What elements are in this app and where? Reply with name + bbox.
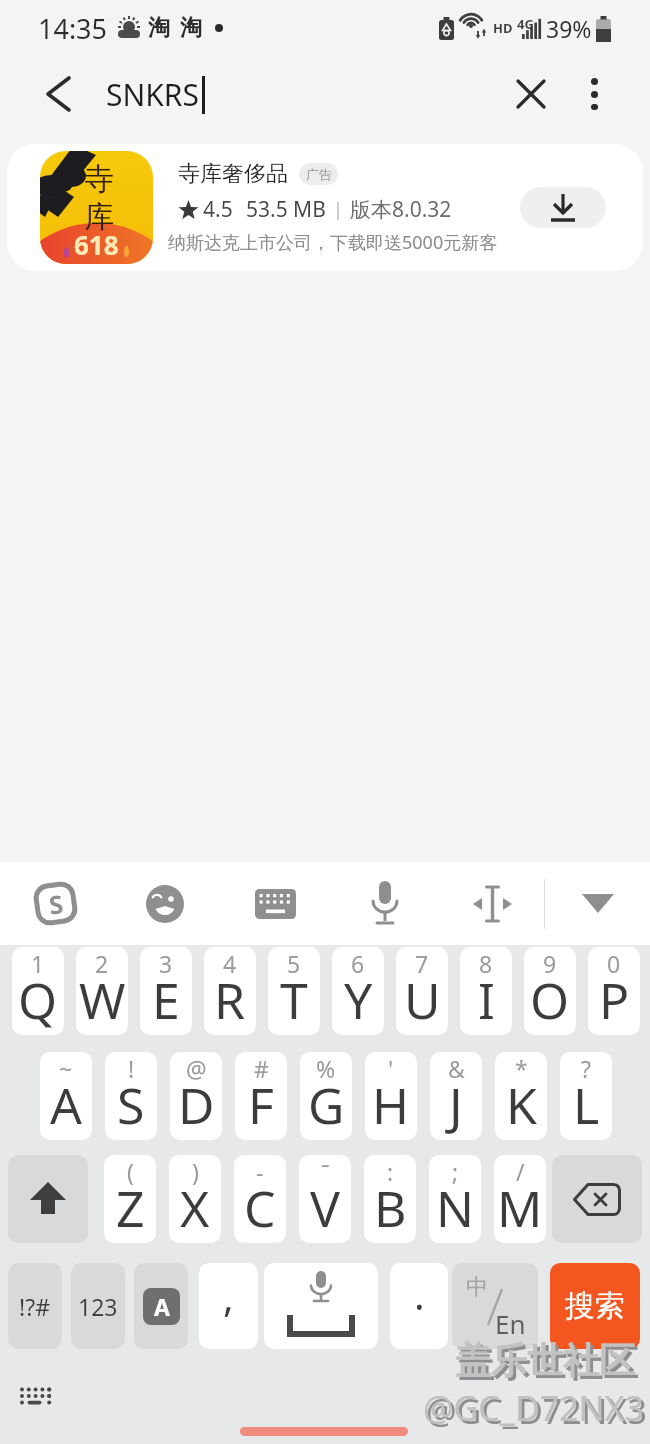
button[interactable]: !: [105, 1052, 157, 1140]
staticText: G: [308, 1071, 345, 1139]
staticText: 盖乐世社区: [455, 1338, 635, 1383]
button[interactable]: 5: [268, 947, 320, 1035]
button[interactable]: 9: [524, 947, 576, 1035]
button[interactable]: [552, 1155, 642, 1243]
staticText: SNKRS: [106, 74, 199, 115]
button[interactable]: .: [390, 1263, 448, 1349]
button[interactable]: !?#: [8, 1263, 62, 1349]
staticText: HD: [493, 19, 513, 37]
staticText: !?#: [19, 1291, 51, 1322]
button[interactable]: [110, 862, 220, 945]
button[interactable]: [34, 70, 82, 118]
staticText: :: [387, 1156, 394, 1187]
staticText: @GC_D72NX3: [426, 1388, 647, 1434]
staticText: N: [436, 1174, 474, 1242]
button[interactable]: ˉ: [299, 1155, 351, 1243]
button[interactable]: ;: [429, 1155, 481, 1243]
staticText: 7: [415, 948, 429, 979]
staticText: 版本8.0.32: [350, 195, 452, 224]
staticText: D: [178, 1071, 215, 1139]
staticText: M: [497, 1174, 543, 1242]
staticText: U: [404, 966, 441, 1034]
staticText: 4.5: [203, 195, 233, 224]
button[interactable]: 1: [12, 947, 64, 1035]
staticText: En: [495, 1306, 526, 1341]
button[interactable]: #: [235, 1052, 287, 1140]
staticText: 39%: [546, 13, 592, 44]
staticText: 14:35: [38, 10, 108, 47]
staticText: ;: [452, 1156, 459, 1187]
staticText: 搜索: [565, 1287, 625, 1325]
button[interactable]: ?: [560, 1052, 612, 1140]
button[interactable]: 3: [140, 947, 192, 1035]
staticText: V: [310, 1174, 340, 1242]
staticText: (: [127, 1156, 134, 1187]
button[interactable]: ~: [40, 1052, 92, 1140]
button[interactable]: [440, 862, 544, 945]
staticText: |: [333, 197, 343, 222]
button[interactable]: /: [494, 1155, 546, 1243]
button[interactable]: @: [170, 1052, 222, 1140]
staticText: 纳斯达克上市公司，下载即送5000元新客: [168, 230, 498, 255]
staticText: 淘: [180, 14, 202, 42]
staticText: K: [506, 1071, 537, 1139]
staticText: 4G: [517, 15, 534, 33]
button[interactable]: 0: [588, 947, 640, 1035]
staticText: 9: [543, 948, 557, 979]
staticText: ~: [59, 1053, 73, 1084]
staticText: !: [128, 1053, 135, 1084]
button[interactable]: 123: [71, 1263, 125, 1349]
staticText: 3: [159, 948, 173, 979]
button[interactable]: ,: [199, 1263, 258, 1349]
staticText: 618: [74, 227, 119, 262]
button[interactable]: [8, 1155, 88, 1243]
button[interactable]: 4: [204, 947, 256, 1035]
button[interactable]: 寺: [7, 144, 643, 271]
staticText: 123: [78, 1291, 118, 1322]
staticText: 5: [287, 948, 301, 979]
button[interactable]: 8: [460, 947, 512, 1035]
staticText: %: [316, 1053, 336, 1084]
button[interactable]: %: [300, 1052, 352, 1140]
staticText: 6: [351, 948, 365, 979]
staticText: A: [50, 1071, 82, 1139]
staticText: Y: [344, 966, 373, 1034]
button[interactable]: :: [364, 1155, 416, 1243]
button[interactable]: 6: [332, 947, 384, 1035]
staticText: A: [154, 1291, 170, 1322]
staticText: 中: [466, 1273, 488, 1301]
button[interactable]: 7: [396, 947, 448, 1035]
staticText: &: [448, 1053, 465, 1084]
button[interactable]: (: [104, 1155, 156, 1243]
button[interactable]: *: [495, 1052, 547, 1140]
button[interactable]: [330, 862, 440, 945]
button[interactable]: A: [134, 1263, 188, 1349]
staticText: T: [280, 966, 308, 1034]
staticText: 库: [84, 198, 114, 236]
staticText: B: [374, 1174, 407, 1242]
button[interactable]: &: [430, 1052, 482, 1140]
button[interactable]: [578, 78, 610, 110]
button[interactable]: [220, 862, 330, 945]
staticText: I: [478, 966, 495, 1034]
button[interactable]: 搜索: [550, 1263, 640, 1349]
staticText: F: [248, 1071, 274, 1139]
button[interactable]: [264, 1263, 378, 1349]
staticText: R: [214, 966, 246, 1034]
staticText: C: [244, 1174, 276, 1242]
button[interactable]: ): [169, 1155, 221, 1243]
button[interactable]: 2: [76, 947, 128, 1035]
button[interactable]: [509, 72, 553, 116]
button[interactable]: S: [0, 862, 110, 945]
staticText: P: [599, 966, 630, 1034]
staticText: X: [180, 1174, 210, 1242]
staticText: @GC_D72NX3: [423, 1385, 644, 1431]
button[interactable]: 中: [452, 1263, 538, 1349]
staticText: #: [254, 1053, 269, 1084]
button[interactable]: [520, 187, 606, 228]
button[interactable]: -: [234, 1155, 286, 1243]
button[interactable]: [545, 862, 650, 945]
staticText: .: [414, 1267, 425, 1321]
staticText: O: [530, 966, 570, 1034]
button[interactable]: ': [365, 1052, 417, 1140]
